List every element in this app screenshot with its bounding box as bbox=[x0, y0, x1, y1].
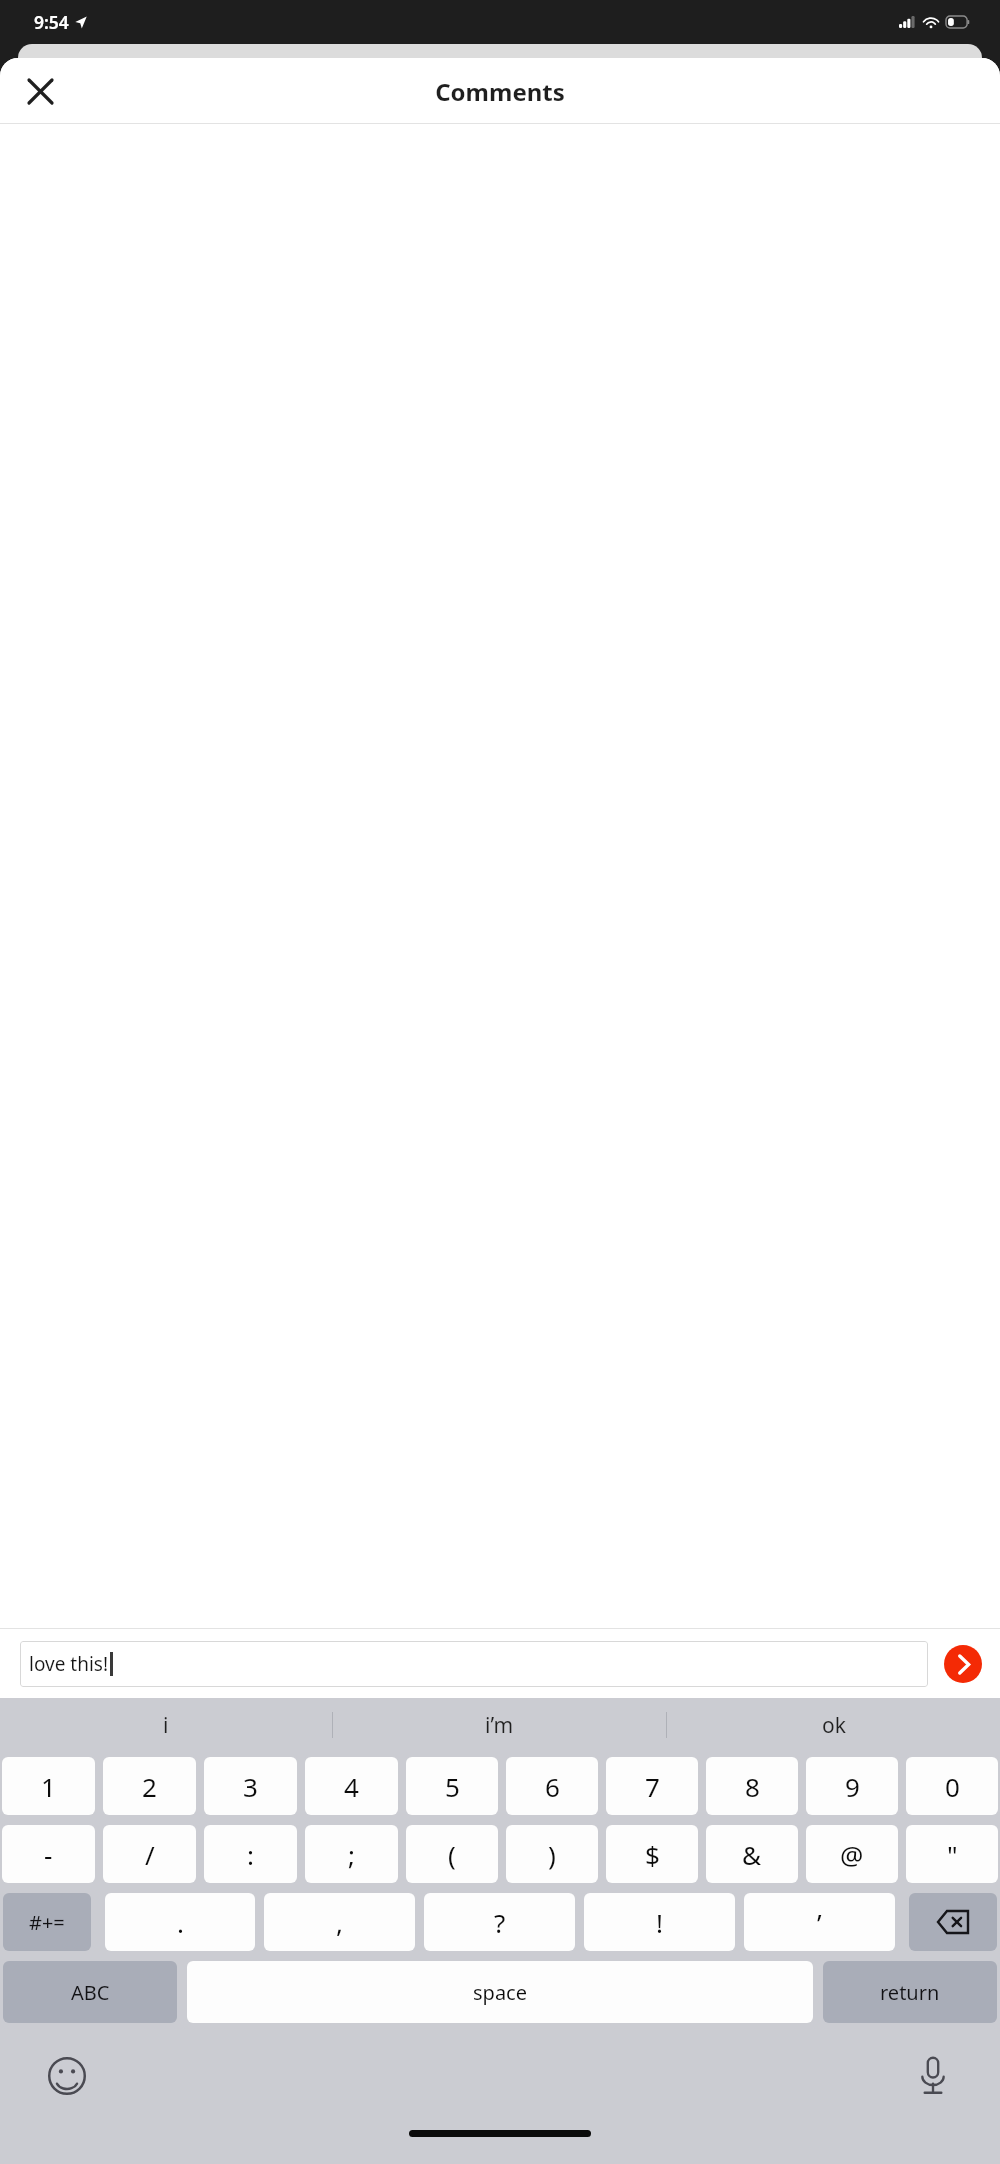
staticText: " bbox=[947, 1837, 958, 1872]
button[interactable]: space bbox=[187, 1961, 813, 2023]
staticText: / bbox=[145, 1837, 155, 1872]
button[interactable]: 3 bbox=[204, 1757, 297, 1815]
button[interactable]: #+= bbox=[3, 1893, 91, 1951]
staticText: : bbox=[247, 1837, 254, 1872]
staticText: Comments bbox=[435, 75, 565, 108]
button[interactable]: ABC bbox=[3, 1961, 177, 2023]
staticText: . bbox=[177, 1905, 184, 1940]
staticText: 4 bbox=[344, 1769, 359, 1804]
staticText: @ bbox=[840, 1837, 864, 1872]
staticText: 8 bbox=[745, 1769, 760, 1804]
staticText: ’ bbox=[817, 1905, 822, 1940]
staticText: $ bbox=[645, 1837, 660, 1872]
button[interactable]: return bbox=[823, 1961, 997, 2023]
button[interactable]: $ bbox=[606, 1825, 698, 1883]
button[interactable]: 4 bbox=[305, 1757, 398, 1815]
button[interactable]: / bbox=[103, 1825, 196, 1883]
button[interactable]: 9 bbox=[806, 1757, 898, 1815]
button[interactable]: - bbox=[2, 1825, 95, 1883]
staticText: i’m bbox=[485, 1711, 514, 1740]
staticText: & bbox=[742, 1837, 762, 1872]
button[interactable]: ’ bbox=[744, 1893, 895, 1951]
staticText: love this! bbox=[29, 1651, 109, 1677]
staticText: ( bbox=[448, 1837, 456, 1872]
button[interactable]: i bbox=[0, 1698, 332, 1752]
button[interactable]: Emoji bbox=[40, 2049, 94, 2103]
staticText: 1 bbox=[41, 1769, 56, 1804]
staticText: 9 bbox=[845, 1769, 860, 1804]
button[interactable]: , bbox=[264, 1893, 415, 1951]
staticText: 2 bbox=[142, 1769, 157, 1804]
staticText: 5 bbox=[445, 1769, 460, 1804]
button[interactable]: Close bbox=[18, 69, 62, 113]
staticText: , bbox=[336, 1905, 343, 1940]
button[interactable]: " bbox=[906, 1825, 998, 1883]
staticText: 3 bbox=[243, 1769, 258, 1804]
staticText: i bbox=[163, 1711, 169, 1740]
button[interactable]: ) bbox=[506, 1825, 598, 1883]
button[interactable]: 6 bbox=[506, 1757, 598, 1815]
staticText: #+= bbox=[29, 1909, 65, 1936]
button[interactable]: ! bbox=[584, 1893, 735, 1951]
button[interactable]: 7 bbox=[606, 1757, 698, 1815]
staticText: ok bbox=[822, 1711, 846, 1740]
button[interactable]: 5 bbox=[406, 1757, 498, 1815]
button[interactable]: 8 bbox=[706, 1757, 798, 1815]
button[interactable]: ok bbox=[667, 1698, 1000, 1752]
button[interactable]: @ bbox=[806, 1825, 898, 1883]
button[interactable]: ( bbox=[406, 1825, 498, 1883]
button[interactable]: Backspace bbox=[909, 1893, 997, 1951]
staticText: ; bbox=[348, 1837, 355, 1872]
button[interactable]: ; bbox=[305, 1825, 398, 1883]
button[interactable]: ? bbox=[424, 1893, 575, 1951]
button[interactable]: : bbox=[204, 1825, 297, 1883]
button[interactable]: 0 bbox=[906, 1757, 998, 1815]
staticText: space bbox=[473, 1979, 527, 2006]
button[interactable]: . bbox=[105, 1893, 255, 1951]
staticText: ? bbox=[494, 1905, 506, 1940]
button[interactable]: i’m bbox=[333, 1698, 666, 1752]
staticText: ! bbox=[656, 1905, 663, 1940]
button[interactable]: love this! bbox=[20, 1641, 928, 1687]
staticText: 0 bbox=[945, 1769, 960, 1804]
staticText: 7 bbox=[645, 1769, 660, 1804]
button[interactable]: Dictation bbox=[906, 2049, 960, 2103]
button[interactable]: & bbox=[706, 1825, 798, 1883]
button[interactable]: 2 bbox=[103, 1757, 196, 1815]
staticText: return bbox=[880, 1979, 940, 2006]
button[interactable]: Send bbox=[944, 1645, 982, 1683]
staticText: ABC bbox=[71, 1979, 110, 2006]
staticText: 9:54 bbox=[34, 10, 69, 34]
staticText: - bbox=[44, 1837, 53, 1872]
staticText: 6 bbox=[545, 1769, 560, 1804]
button[interactable]: 1 bbox=[2, 1757, 95, 1815]
staticText: ) bbox=[548, 1837, 556, 1872]
